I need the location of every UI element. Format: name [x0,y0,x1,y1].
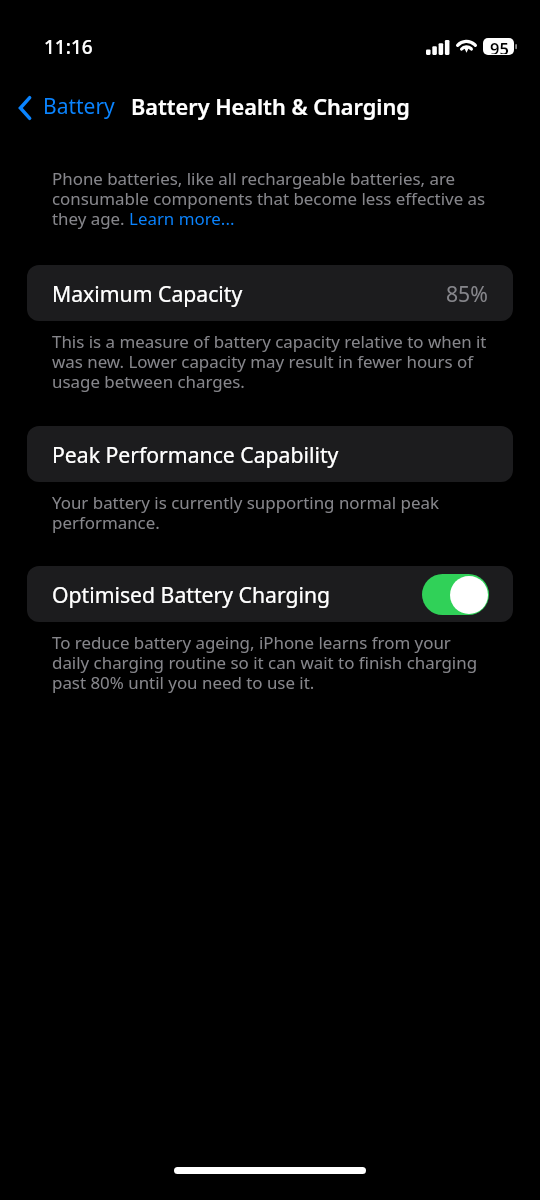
staticText: Maximum Capacity [52,279,243,308]
button[interactable]: Peak Performance Capability [27,426,513,482]
staticText: Optimised Battery Charging [52,580,331,609]
button[interactable]: Optimised Battery Charging, on [422,574,489,615]
staticText: 95 [490,37,509,54]
staticText: Phone batteries, like all rechargeable b… [52,167,489,229]
staticText: 85% [446,279,488,308]
staticText: 11:16 [44,34,93,60]
staticText: To reduce battery ageing, iPhone learns … [52,631,489,694]
button[interactable]: Battery [14,90,115,122]
button[interactable]: Optimised Battery Charging [27,566,513,622]
staticText: Peak Performance Capability [52,440,339,469]
button[interactable]: Learn more... [128,209,238,231]
staticText: This is a measure of battery capacity re… [52,330,489,393]
staticText: Your battery is currently supporting nor… [52,491,489,534]
staticText: Battery [43,92,115,121]
staticText: Battery Health & Charging [131,92,410,122]
button[interactable]: Maximum Capacity [27,265,513,321]
